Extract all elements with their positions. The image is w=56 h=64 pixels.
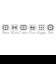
staticText: Pass <box>1 30 9 35</box>
button[interactable]: Mail <box>10 24 19 34</box>
button[interactable]: Apps <box>37 24 46 34</box>
button[interactable]: Cam <box>19 24 28 34</box>
staticText: Pics <box>29 30 36 35</box>
button[interactable]: Pics <box>28 24 37 34</box>
button[interactable]: Set <box>46 24 55 34</box>
staticText: Set <box>48 30 53 35</box>
button[interactable]: Pass <box>1 24 10 34</box>
staticText: Mail <box>10 30 18 35</box>
staticText: Apps <box>37 30 46 35</box>
staticText: Cam <box>19 30 28 35</box>
